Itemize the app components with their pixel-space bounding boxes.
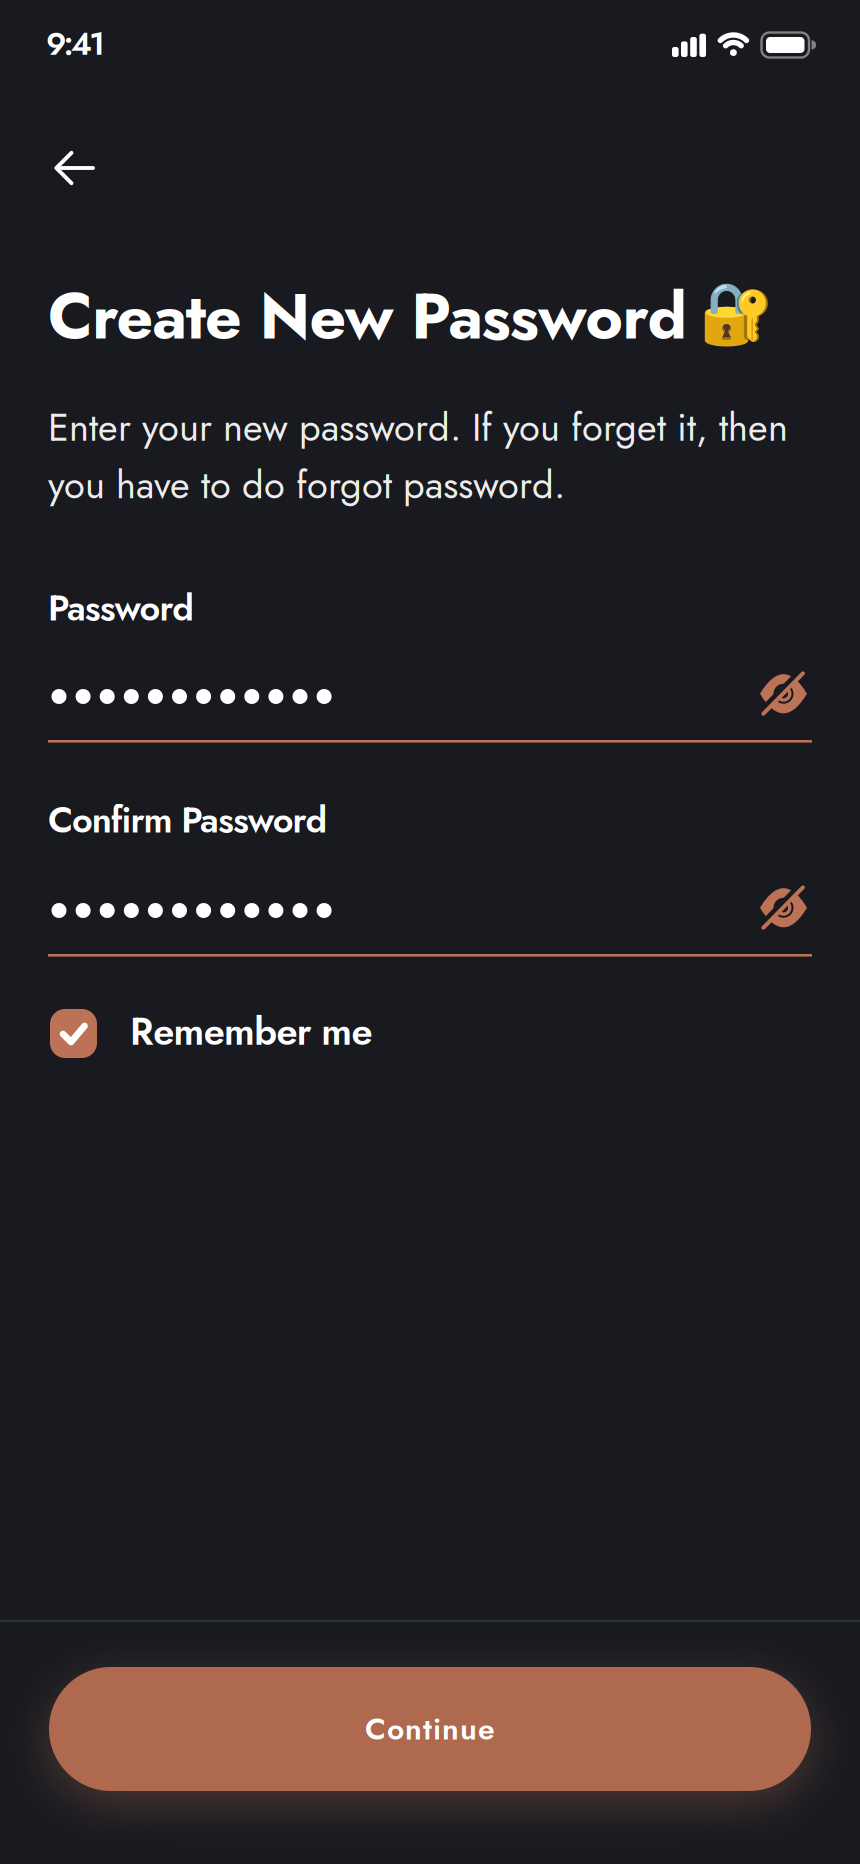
staticText: Confirm Password bbox=[48, 794, 327, 846]
button[interactable]: Back bbox=[55, 152, 95, 184]
staticText: 9:41 bbox=[46, 20, 105, 67]
button[interactable]: Continue bbox=[49, 1667, 811, 1791]
staticText: Remember me bbox=[130, 1004, 372, 1059]
staticText: Enter your new password. If you forget i… bbox=[48, 400, 788, 455]
button[interactable]: Remember me bbox=[50, 1009, 470, 1058]
button[interactable]: Show password bbox=[752, 880, 816, 936]
staticText: 🔐 bbox=[699, 279, 774, 348]
staticText: Password bbox=[48, 582, 194, 634]
staticText: Create New Password bbox=[48, 270, 687, 362]
staticText: Continue bbox=[365, 1707, 495, 1751]
button[interactable]: Show password bbox=[752, 666, 816, 722]
staticText: you have to do forgot password. bbox=[48, 458, 565, 512]
